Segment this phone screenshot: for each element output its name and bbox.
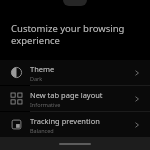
staticText: Balanced [30,127,54,134]
staticText: Theme [30,64,55,74]
staticText: New tab page layout [30,90,103,100]
other: Open Tracking prevention [133,121,141,129]
other: Theme [11,67,22,78]
button[interactable]: Theme [0,60,150,85]
other: New tab page layout [11,93,22,104]
staticText: Customize your browsing experience [11,22,134,47]
staticText: Tracking prevention [30,116,100,126]
staticText: Informative [30,101,61,108]
staticText: Dark [30,75,43,82]
other: Open Theme [133,69,141,77]
button[interactable]: New tab page layout [0,86,150,111]
other: Tracking prevention [11,119,22,130]
button[interactable]: Tracking prevention [0,112,150,137]
other: Open New tab page layout [133,95,141,103]
